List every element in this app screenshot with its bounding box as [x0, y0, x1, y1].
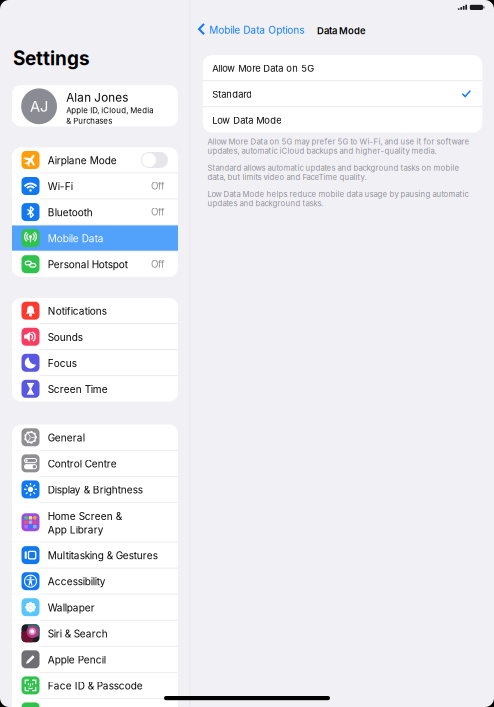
button[interactable]: General	[12, 425, 178, 450]
button[interactable]: Wi-Fi	[12, 173, 178, 199]
button[interactable]: Wallpaper	[12, 594, 178, 620]
staticText: Mobile Data	[48, 233, 104, 245]
staticText: AJ	[30, 97, 48, 115]
button[interactable]: Allow More Data on 5G	[203, 55, 482, 80]
staticText: Off	[151, 258, 165, 270]
button[interactable]: Multitasking & Gestures	[12, 542, 178, 568]
button[interactable]: Accessibility	[12, 568, 178, 594]
staticText: Home Screen &	[48, 510, 122, 522]
button[interactable]: Mobile Data Options	[198, 18, 304, 40]
staticText: Face ID & Passcode	[48, 680, 143, 692]
button[interactable]: Siri & Search	[12, 621, 178, 646]
button[interactable]: Low Data Mode	[203, 107, 482, 132]
staticText: Personal Hotspot	[48, 259, 128, 271]
button[interactable]: Apple Pencil	[12, 647, 178, 672]
staticText: Siri & Search	[48, 628, 108, 640]
button[interactable]: Notifications	[12, 298, 178, 323]
button[interactable]: AJ	[12, 85, 178, 126]
staticText: Screen Time	[48, 383, 108, 395]
staticText: Mobile Data Options	[209, 24, 304, 36]
button[interactable]: Focus	[12, 350, 178, 375]
button[interactable]: Screen Time	[12, 376, 178, 402]
staticText: Bluetooth	[48, 207, 93, 219]
staticText: Off	[151, 180, 165, 192]
staticText: Accessibility	[48, 576, 106, 588]
button[interactable]: Display & Brightness	[12, 477, 178, 502]
staticText: Off	[151, 206, 165, 218]
button[interactable]: Personal Hotspot	[12, 251, 178, 277]
button[interactable]: Airplane Mode	[12, 147, 178, 173]
staticText: Standard	[212, 89, 252, 100]
button[interactable]: Standard	[203, 81, 482, 106]
staticText: Multitasking & Gestures	[48, 550, 158, 562]
staticText: Display & Brightness	[48, 484, 143, 496]
staticText: Wallpaper	[48, 602, 95, 614]
button[interactable]: Mobile Data	[12, 225, 178, 251]
staticText: Apple ID, iCloud, Media	[66, 106, 153, 115]
staticText: General	[48, 432, 85, 444]
staticText: Sounds	[48, 331, 83, 343]
button[interactable]: Sounds	[12, 324, 178, 349]
staticText: Wi-Fi	[48, 180, 73, 193]
button[interactable]: Bluetooth	[12, 199, 178, 225]
staticText: Notifications	[48, 305, 107, 317]
staticText: Apple Pencil	[48, 654, 106, 666]
staticText: Low Data Mode helps reduce mobile data u…	[207, 189, 468, 208]
staticText: Allow More Data on 5G	[212, 63, 314, 74]
staticText: Airplane Mode	[48, 154, 117, 167]
staticText: Standard allows automatic updates and ba…	[207, 163, 459, 182]
staticText: Settings	[13, 47, 90, 70]
staticText: Focus	[48, 357, 77, 369]
staticText: Allow More Data on 5G may prefer 5G to W…	[207, 137, 469, 156]
button[interactable]: Face ID & Passcode	[12, 673, 178, 698]
button[interactable]: Control Centre	[12, 451, 178, 476]
button[interactable]: Home Screen &	[12, 503, 178, 542]
button[interactable]: Battery	[12, 699, 178, 707]
staticText: & Purchases	[66, 116, 112, 125]
staticText: Low Data Mode	[212, 115, 281, 126]
staticText: Control Centre	[48, 458, 117, 470]
staticText: Alan Jones	[66, 91, 128, 105]
staticText: Data Mode	[317, 25, 366, 37]
staticText: App Library	[48, 524, 104, 536]
